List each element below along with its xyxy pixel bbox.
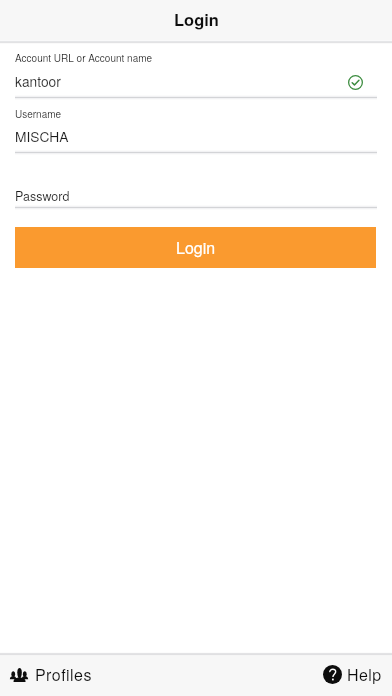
staticText: Account URL or Account name (15, 51, 153, 65)
staticText: Username (15, 107, 62, 121)
staticText: Help (347, 663, 382, 686)
staticText: Login (174, 7, 219, 31)
other: Help (323, 665, 342, 684)
button[interactable]: Login (15, 227, 376, 268)
staticText: kantoor (15, 71, 61, 91)
staticText: Login (176, 236, 216, 259)
staticText: MISCHA (15, 126, 69, 146)
staticText: Profiles (35, 663, 92, 686)
other: Profiles (10, 668, 28, 682)
button[interactable]: Help (320, 659, 390, 691)
button[interactable]: Profiles (4, 659, 102, 691)
staticText: Password (15, 187, 70, 205)
